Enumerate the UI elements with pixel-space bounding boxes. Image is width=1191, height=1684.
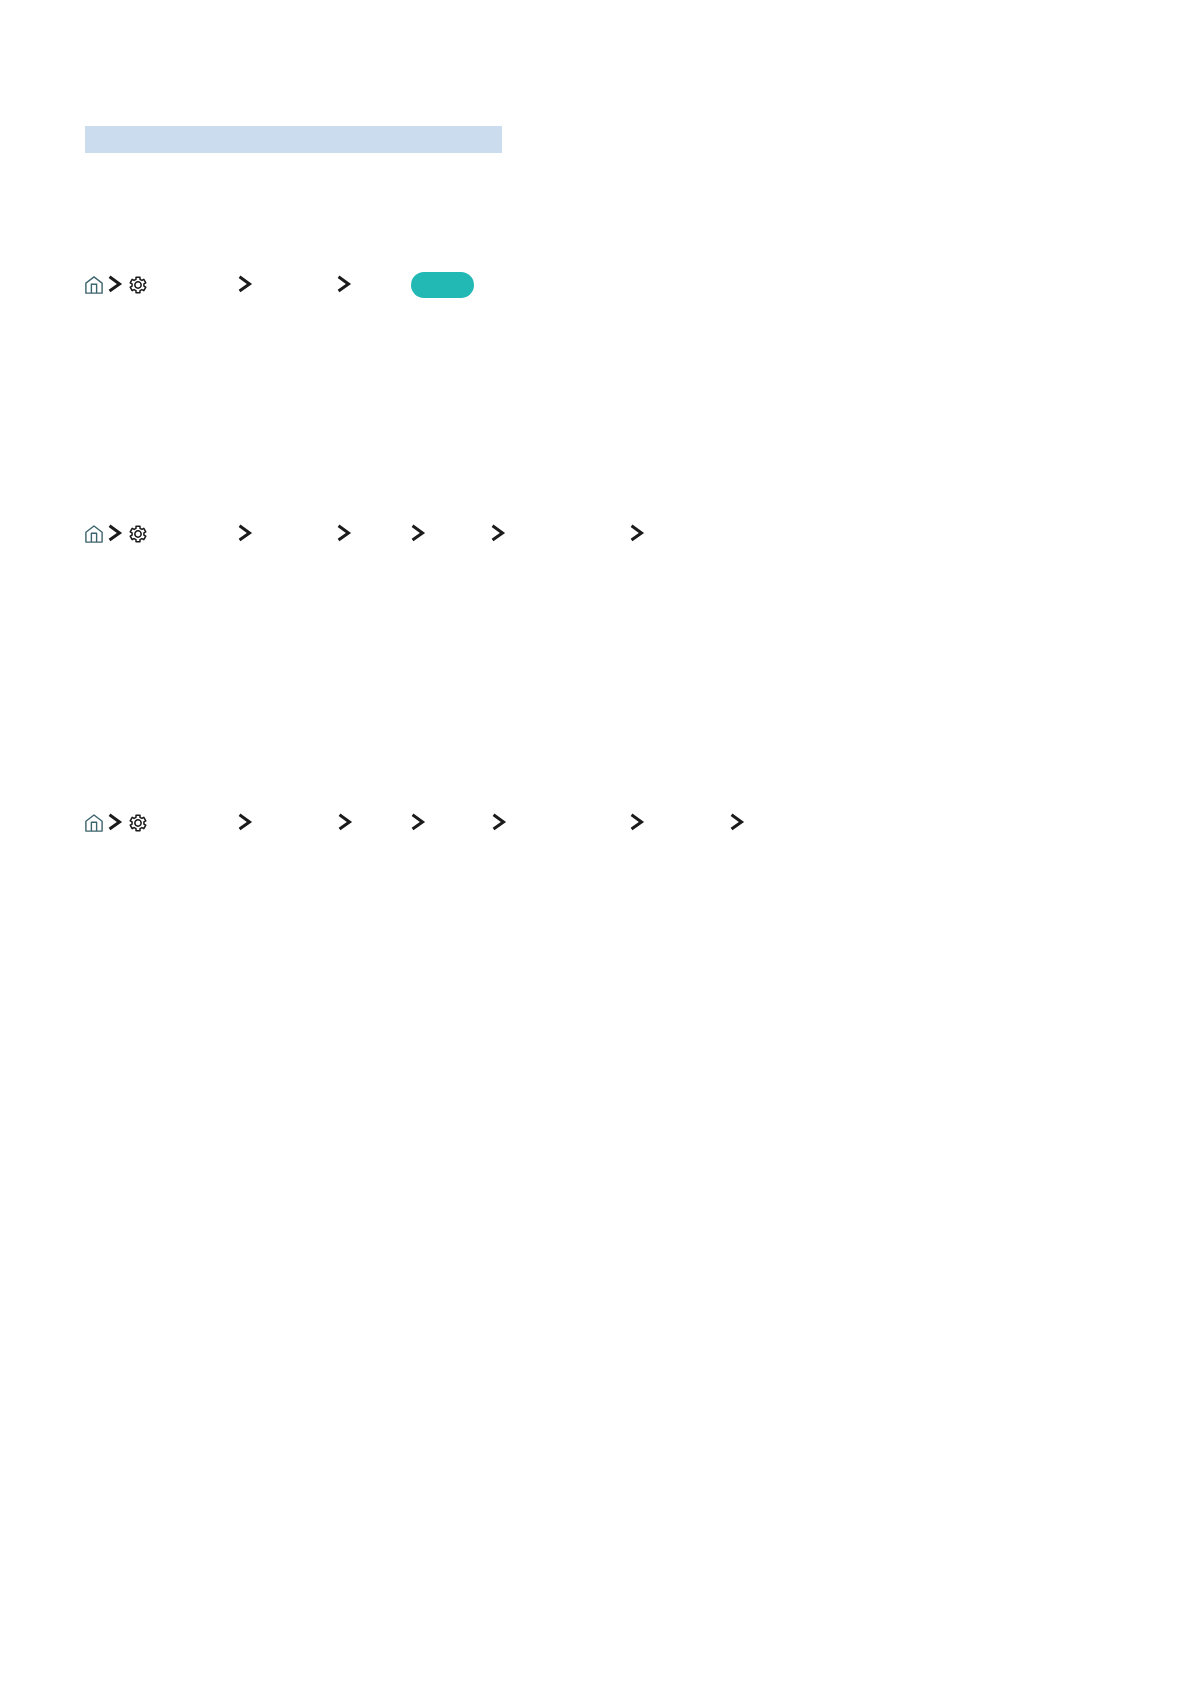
button[interactable]: Settings: [129, 276, 147, 294]
button[interactable]: Settings: [129, 525, 147, 543]
button[interactable]: Home: [85, 276, 103, 294]
button[interactable]: Settings: [129, 814, 147, 832]
button[interactable]: Home: [85, 525, 103, 543]
button[interactable]: Home: [85, 814, 103, 832]
button[interactable]: Current setting: [411, 272, 474, 298]
